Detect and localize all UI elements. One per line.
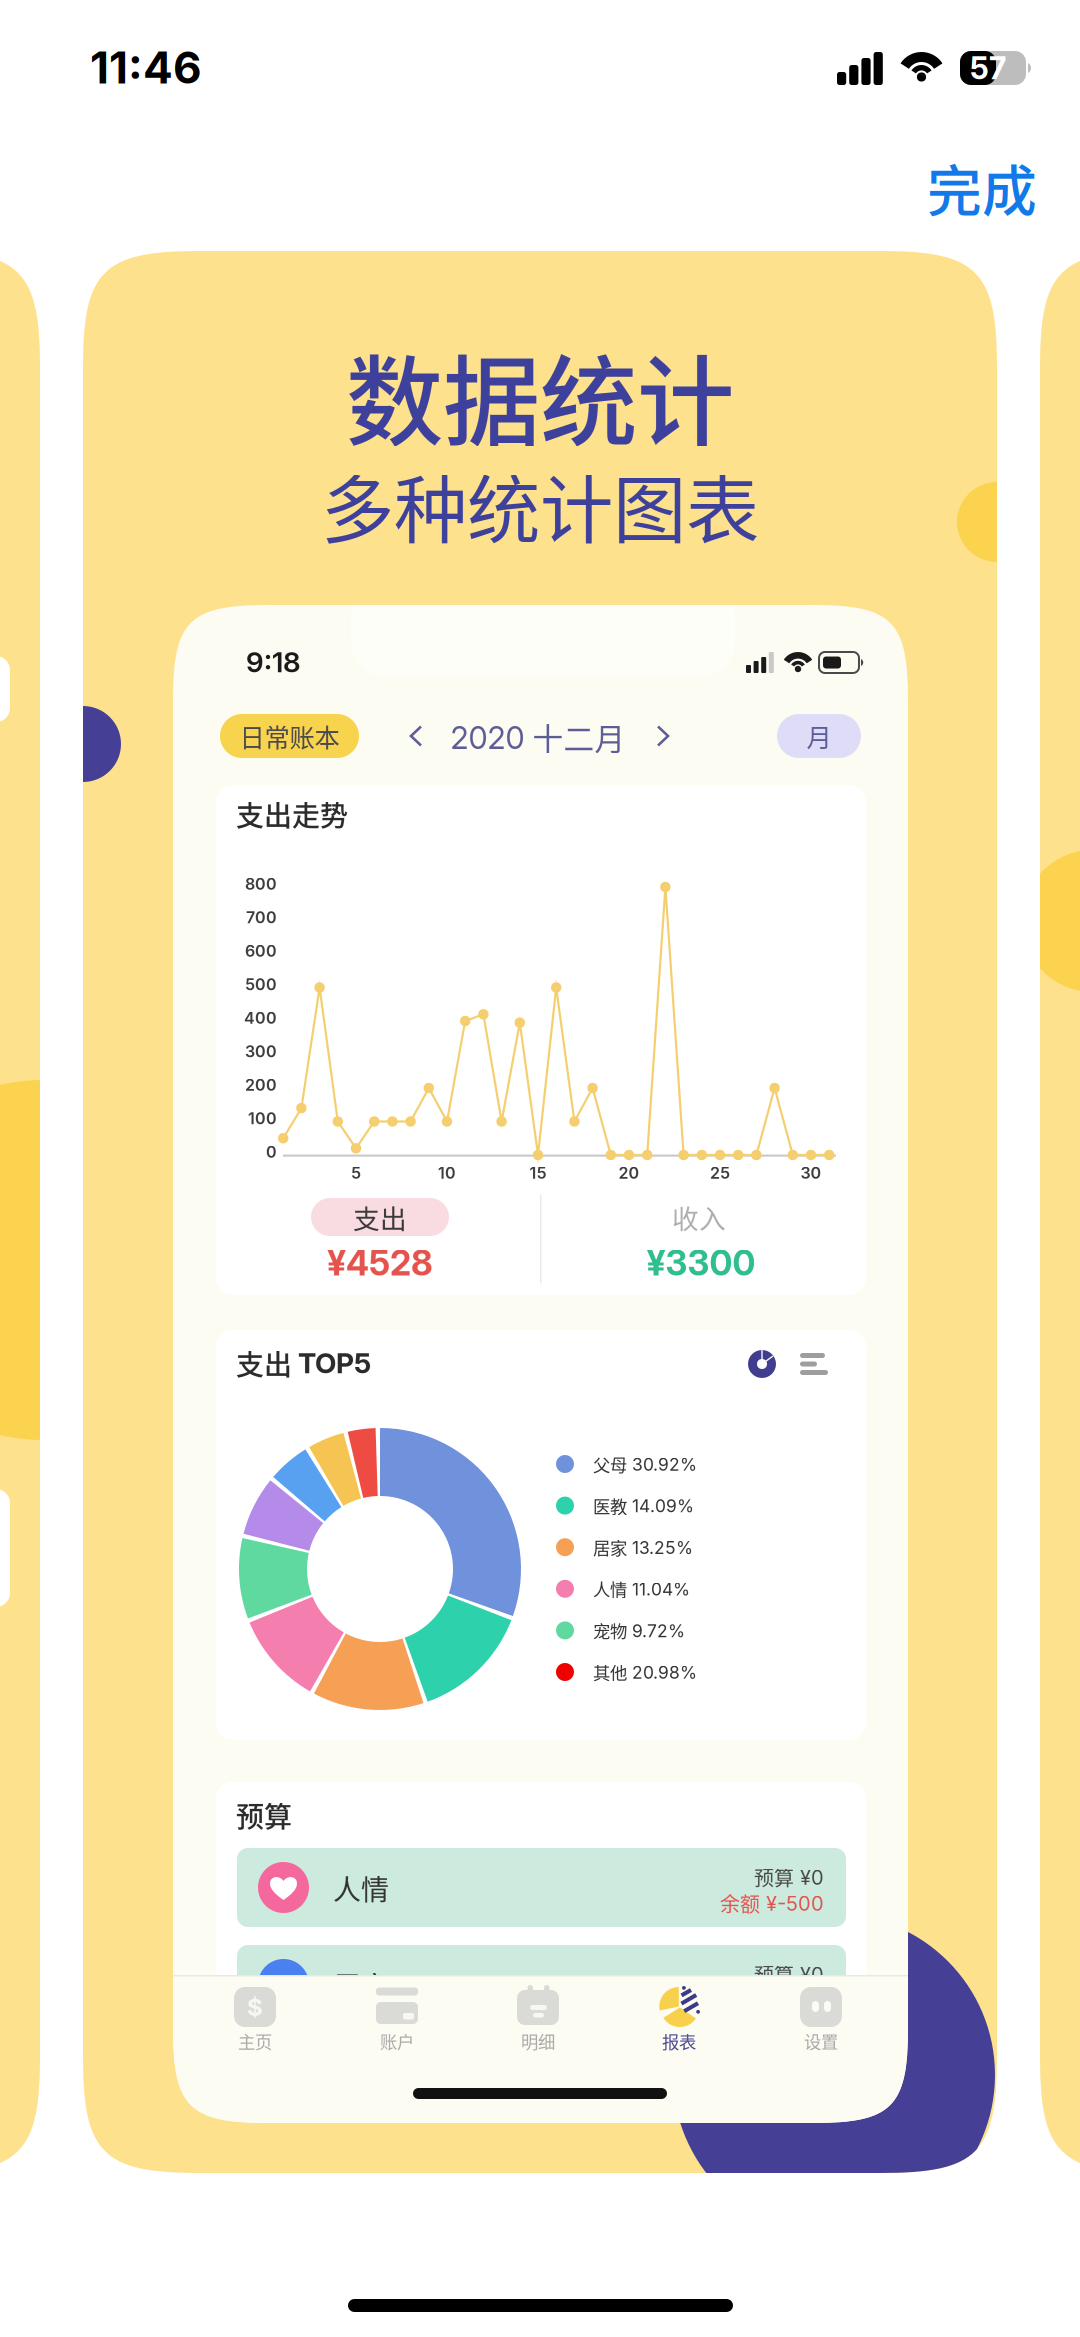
staticText: 预算 (236, 1795, 292, 1835)
button[interactable]: 收入 (630, 1198, 768, 1236)
button[interactable]: $ (209, 1980, 301, 2066)
staticText: 其他 20.98% (593, 1659, 697, 1685)
staticText: 数据统计 (346, 324, 734, 465)
staticText: 账户 (380, 2028, 414, 2054)
staticText: 余额 ¥-500 (720, 1888, 824, 1917)
staticText: 600 (245, 941, 277, 961)
button[interactable]: Pie chart view (742, 1344, 782, 1384)
staticText: ¥3300 (646, 1242, 755, 1284)
staticText: $ (247, 1992, 263, 2021)
button[interactable]: 完成 (857, 141, 1037, 233)
staticText: 设置 (804, 2028, 838, 2054)
staticText: 25 (710, 1163, 730, 1183)
staticText: 200 (245, 1075, 277, 1095)
staticText: 57 (970, 49, 1006, 86)
button[interactable]: 日常账本 (220, 714, 359, 758)
staticText: 支出 (236, 1343, 292, 1383)
button[interactable]: List view (794, 1344, 834, 1384)
staticText: 人情 11.04% (593, 1576, 690, 1601)
staticText: 日常账本 (239, 718, 339, 754)
staticText: ¥4528 (327, 1242, 433, 1284)
staticText: 11:46 (90, 41, 202, 94)
button[interactable]: Next month (642, 714, 684, 758)
button[interactable]: 月 (777, 714, 861, 758)
staticText: 15 (529, 1163, 546, 1183)
button[interactable]: Previous month (395, 714, 437, 758)
staticText: 0 (266, 1142, 277, 1162)
staticText: 月 (806, 718, 831, 754)
staticText: 医教 14.09% (593, 1493, 694, 1518)
button[interactable]: 报表 (633, 1980, 725, 2066)
staticText: 2020 十二月 (450, 715, 625, 759)
staticText: 5 (351, 1163, 361, 1183)
staticText: 父母 30.92% (593, 1451, 697, 1477)
staticText: 主页 (238, 2028, 272, 2054)
staticText: TOP5 (298, 1346, 371, 1380)
button[interactable]: 设置 (775, 1980, 867, 2066)
staticText: 30 (800, 1163, 821, 1183)
staticText: 完成 (927, 147, 1037, 227)
staticText: 100 (248, 1109, 277, 1128)
button[interactable]: 明细 (492, 1980, 584, 2066)
staticText: 宠物 9.72% (593, 1618, 685, 1643)
staticText: 700 (246, 908, 277, 927)
button[interactable]: 居家 (237, 1945, 846, 2024)
staticText: 支出 (353, 1198, 407, 1236)
staticText: 500 (245, 975, 277, 994)
staticText: 800 (245, 874, 277, 894)
staticText: 收入 (672, 1198, 726, 1236)
staticText: 20 (618, 1163, 639, 1183)
button[interactable]: 支出 (311, 1198, 449, 1236)
button[interactable]: 账户 (351, 1980, 443, 2066)
staticText: 居家 13.25% (593, 1535, 693, 1560)
button[interactable]: 人情 (237, 1848, 846, 1927)
staticText: 300 (245, 1042, 277, 1061)
staticText: 400 (244, 1008, 277, 1028)
staticText: 人情 (333, 1868, 389, 1908)
staticText: 报表 (662, 2028, 696, 2054)
staticText: 居家 (333, 1965, 389, 2005)
staticText: 预算 ¥0 (754, 1862, 824, 1891)
staticText: 9:18 (246, 645, 301, 679)
staticText: 明细 (521, 2028, 555, 2054)
staticText: 余额 ¥0 (754, 1985, 824, 2014)
staticText: 预算 ¥0 (754, 1959, 824, 1988)
staticText: 多种统计图表 (321, 452, 759, 558)
staticText: 支出走势 (236, 794, 348, 834)
staticText: 10 (438, 1163, 456, 1183)
